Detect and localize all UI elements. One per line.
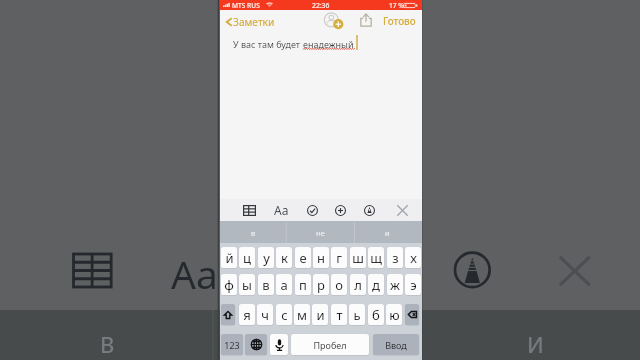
staticText: ь xyxy=(353,306,361,324)
staticText: У вас там будет xyxy=(233,38,303,50)
staticText: н xyxy=(317,249,325,267)
staticText: и xyxy=(316,306,325,324)
staticText: с xyxy=(281,306,288,324)
button[interactable]: х xyxy=(405,247,421,268)
button[interactable]: ы xyxy=(239,274,255,295)
staticText: 123 xyxy=(224,339,240,351)
staticText: я xyxy=(243,306,251,324)
button[interactable]: ю xyxy=(386,304,402,325)
button[interactable]: Пробел xyxy=(291,334,369,355)
staticText: щ xyxy=(370,249,382,267)
button[interactable]: ж xyxy=(387,274,403,295)
button[interactable]: Format xyxy=(268,199,294,221)
button[interactable]: ч xyxy=(257,304,273,325)
button[interactable]: ц xyxy=(239,247,255,268)
staticText: э xyxy=(410,276,417,294)
button[interactable]: Ввод xyxy=(373,334,419,355)
button[interactable]: д xyxy=(368,274,384,295)
staticText: ы xyxy=(242,276,252,294)
staticText: 17 % xyxy=(389,1,404,10)
staticText: Ввод xyxy=(385,339,407,351)
staticText: В xyxy=(100,329,115,359)
button[interactable]: м xyxy=(294,304,310,325)
button[interactable]: н xyxy=(313,247,329,268)
button[interactable]: и xyxy=(312,304,328,325)
staticText: х xyxy=(410,249,417,267)
button[interactable]: Backspace xyxy=(405,304,419,325)
button[interactable]: п xyxy=(295,274,311,295)
staticText: ж xyxy=(390,276,400,294)
button[interactable]: й xyxy=(221,247,237,268)
staticText: Aa xyxy=(274,202,289,218)
staticText: Aa xyxy=(171,247,218,300)
button[interactable]: не xyxy=(287,221,354,244)
staticText: Заметки xyxy=(233,15,275,29)
button[interactable]: щ xyxy=(368,247,384,268)
button[interactable]: Shift xyxy=(221,304,235,325)
staticText: Пробел xyxy=(313,339,347,351)
button[interactable]: в xyxy=(258,274,274,295)
staticText: и xyxy=(385,228,390,238)
staticText: р xyxy=(317,276,325,294)
staticText: И xyxy=(527,329,544,359)
staticText: ш xyxy=(352,249,364,267)
button[interactable]: ь xyxy=(349,304,365,325)
staticText: ч xyxy=(261,306,269,324)
button[interactable]: р xyxy=(313,274,329,295)
button[interactable]: э xyxy=(405,274,421,295)
button[interactable]: Close xyxy=(389,199,415,221)
button[interactable]: в xyxy=(220,221,287,244)
staticText: ф xyxy=(224,276,234,294)
button[interactable]: г xyxy=(331,247,347,268)
staticText: й xyxy=(225,249,234,267)
staticText: о xyxy=(335,276,343,294)
button[interactable]: Next keyboard xyxy=(245,334,267,355)
button[interactable]: ш xyxy=(350,247,366,268)
button[interactable]: Add xyxy=(327,199,353,221)
button[interactable]: с xyxy=(276,304,292,325)
button[interactable]: Checklist xyxy=(299,199,325,221)
staticText: е xyxy=(299,249,307,267)
button[interactable]: Share xyxy=(360,13,372,27)
staticText: MTS RUS xyxy=(232,1,260,10)
button[interactable]: б xyxy=(368,304,384,325)
staticText: а xyxy=(280,276,288,294)
staticText: д xyxy=(372,276,380,294)
button[interactable]: Table xyxy=(236,199,262,221)
button[interactable]: Заметки xyxy=(226,14,275,29)
staticText: 22:36 xyxy=(312,1,330,10)
staticText: к xyxy=(281,249,288,267)
staticText: Готово xyxy=(383,15,416,28)
button[interactable]: Готово xyxy=(383,14,416,29)
button[interactable]: о xyxy=(331,274,347,295)
staticText: т xyxy=(336,306,343,324)
button[interactable]: Add person xyxy=(323,13,344,27)
staticText: в xyxy=(251,228,256,238)
button[interactable]: я xyxy=(239,304,255,325)
staticText: г xyxy=(336,249,342,267)
button[interactable]: к xyxy=(276,247,292,268)
button[interactable]: 123 xyxy=(221,334,243,355)
staticText: л xyxy=(354,276,362,294)
button[interactable]: у xyxy=(258,247,274,268)
staticText: в xyxy=(262,276,270,294)
staticText: з xyxy=(392,249,399,267)
button[interactable]: Markup xyxy=(356,199,382,221)
staticText: п xyxy=(299,276,307,294)
staticText: ц xyxy=(243,249,251,267)
staticText: ю xyxy=(389,306,400,324)
staticText: енадежный xyxy=(303,38,354,50)
button[interactable]: ф xyxy=(221,274,237,295)
button[interactable]: Dictate xyxy=(270,334,288,355)
button[interactable]: л xyxy=(350,274,366,295)
staticText: м xyxy=(297,306,307,324)
button[interactable]: з xyxy=(387,247,403,268)
button[interactable]: т xyxy=(331,304,347,325)
staticText: б xyxy=(372,306,380,324)
button[interactable]: а xyxy=(276,274,292,295)
button[interactable]: и xyxy=(354,221,421,244)
staticText: не xyxy=(316,228,325,238)
staticText: у xyxy=(263,249,270,267)
button[interactable]: е xyxy=(295,247,311,268)
